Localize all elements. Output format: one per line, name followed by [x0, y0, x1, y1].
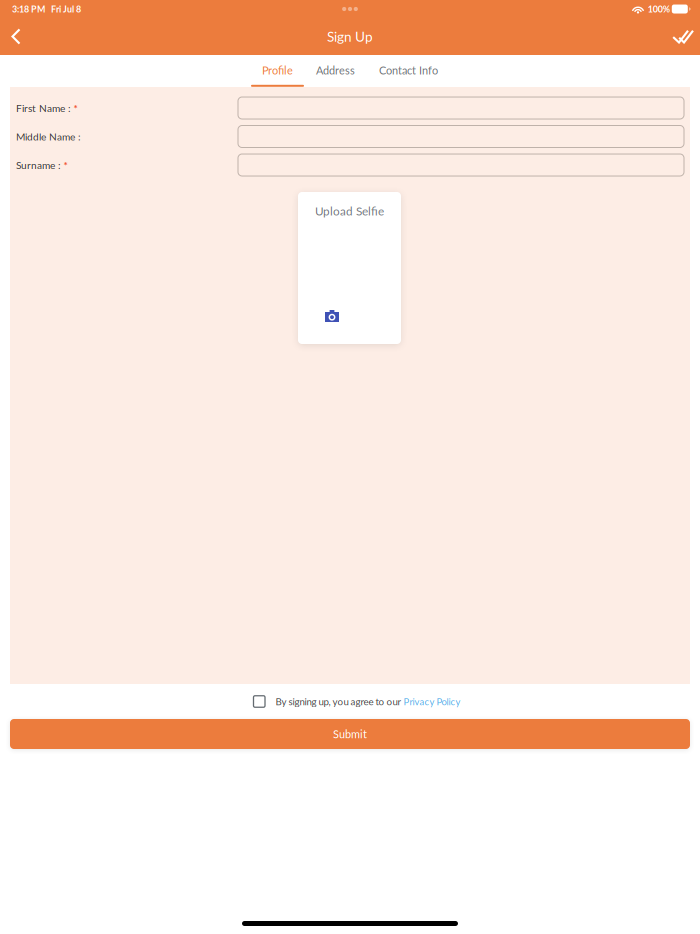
- staticText: *: [73, 102, 77, 114]
- staticText: Submit: [333, 727, 367, 740]
- staticText: Fri Jul 8: [51, 4, 81, 14]
- button[interactable]: Address: [315, 55, 356, 87]
- staticText: By signing up, you agree to our: [275, 696, 401, 707]
- button[interactable]: Privacy Policy: [403, 696, 460, 707]
- button[interactable]: Contact Info: [379, 55, 438, 87]
- button[interactable]: Upload Selfie: [298, 192, 401, 344]
- staticText: Address: [316, 64, 355, 77]
- button[interactable]: Submit: [10, 719, 690, 749]
- button[interactable]: Back: [0, 19, 33, 53]
- staticText: Sign Up: [327, 28, 373, 45]
- button[interactable]: Profile: [262, 55, 293, 87]
- staticText: 3:18 PM: [12, 4, 45, 14]
- staticText: Privacy Policy: [403, 696, 460, 707]
- button[interactable]: Done: [665, 19, 700, 53]
- staticText: *: [63, 159, 67, 171]
- staticText: Contact Info: [379, 64, 438, 77]
- button[interactable]: Agree to terms: [253, 696, 265, 707]
- staticText: Surname :: [16, 159, 61, 171]
- staticText: Profile: [262, 64, 293, 77]
- staticText: First Name :: [16, 102, 71, 114]
- staticText: Upload Selfie: [315, 204, 384, 218]
- staticText: Middle Name :: [16, 130, 81, 143]
- staticText: 100%: [648, 4, 670, 14]
